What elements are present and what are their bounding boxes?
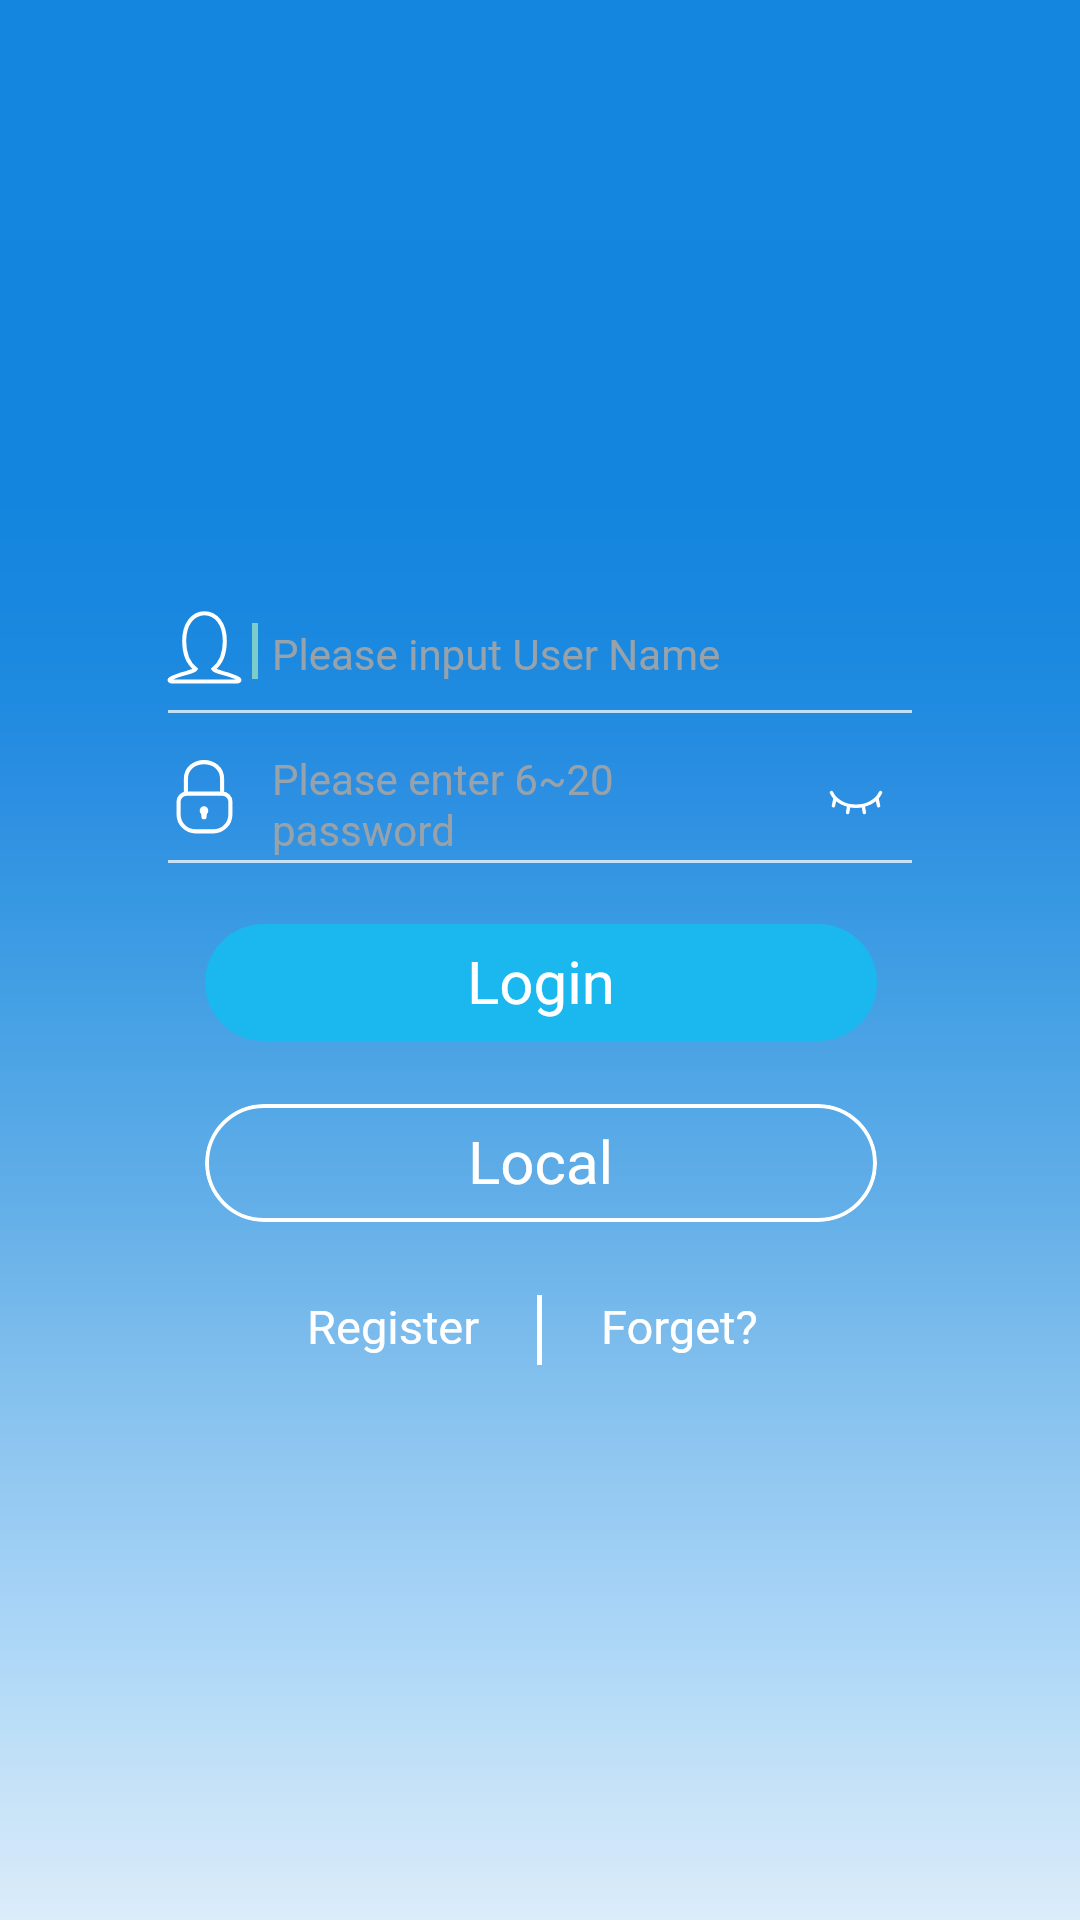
button[interactable]: Register xyxy=(287,1286,500,1369)
staticText: Please input User Name xyxy=(272,631,721,680)
button[interactable]: Login xyxy=(205,924,877,1041)
button[interactable]: Show password xyxy=(816,764,896,844)
staticText: Please enter 6~20 password xyxy=(272,756,662,857)
staticText: Register xyxy=(307,1300,480,1355)
staticText: Forget? xyxy=(601,1300,758,1355)
button[interactable]: Local xyxy=(205,1104,877,1222)
button[interactable]: Forget? xyxy=(581,1286,778,1369)
staticText: Login xyxy=(467,948,615,1018)
staticText: Local xyxy=(468,1128,614,1198)
